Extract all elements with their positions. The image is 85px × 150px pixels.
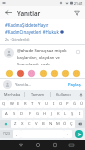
button[interactable]: @ahude Sonuçsuz miçok [0, 45, 85, 67]
staticText: O [59, 101, 63, 107]
button[interactable]: Key [0, 130, 13, 138]
button[interactable]: . [64, 130, 72, 138]
button[interactable]: J [48, 110, 55, 118]
button[interactable]: Key [0, 120, 11, 128]
button[interactable]: B [40, 120, 47, 128]
button[interactable]: Key [75, 120, 85, 128]
staticText: Kullanıcı [56, 92, 71, 97]
button[interactable]: F [26, 110, 34, 118]
staticText: R [24, 101, 27, 107]
staticText: G [36, 111, 40, 117]
button[interactable]: L [62, 110, 69, 118]
staticText: ?123 [3, 132, 10, 136]
staticText: P [66, 101, 69, 107]
button[interactable]: Back [12, 140, 29, 150]
button[interactable]: Paylaş [67, 81, 82, 89]
button[interactable]: Emoji [50, 69, 58, 77]
button[interactable]: Ü [78, 100, 85, 108]
button[interactable]: V [33, 120, 40, 128]
staticText: F [29, 111, 32, 117]
staticText: T [31, 101, 34, 107]
button[interactable]: Emoji [5, 69, 13, 77]
staticText: Ş [71, 111, 74, 117]
staticText: C [28, 121, 31, 127]
button[interactable]: Merhaba [0, 90, 24, 99]
button[interactable]: A [2, 110, 10, 118]
button[interactable]: U [43, 100, 50, 108]
button[interactable]: O [57, 100, 64, 108]
button[interactable]: Emoji [16, 69, 24, 77]
button[interactable]: Q [0, 100, 8, 108]
staticText: K [57, 111, 60, 117]
staticText: D [20, 111, 24, 117]
button[interactable]: Back [3, 7, 14, 18]
staticText: 21:41 [74, 1, 83, 6]
button[interactable]: Hide keyboard [63, 140, 80, 150]
button[interactable]: H [41, 110, 48, 118]
staticText: Ğ [73, 101, 77, 107]
staticText: . [67, 131, 69, 137]
staticText: , [16, 131, 18, 137]
button[interactable]: Emoji [39, 69, 47, 77]
button[interactable]: Voice input [76, 90, 85, 99]
button[interactable]: G [34, 110, 41, 118]
staticText: E [17, 101, 20, 107]
staticText: Paylaş [68, 82, 81, 88]
staticText: B [42, 121, 45, 127]
button[interactable]: R [22, 100, 29, 108]
button[interactable]: E [15, 100, 22, 108]
button[interactable]: I [50, 100, 57, 108]
button[interactable]: Emoji [72, 69, 80, 77]
button[interactable]: D [18, 110, 26, 118]
staticText: X [21, 121, 24, 127]
button[interactable]: Z [11, 120, 19, 128]
staticText: U [45, 101, 49, 107]
staticText: M [56, 121, 60, 127]
button[interactable]: X [19, 120, 26, 128]
button[interactable]: Ö [61, 120, 68, 128]
button[interactable]: , [13, 130, 21, 138]
button[interactable]: Recent apps [46, 140, 63, 150]
button[interactable]: Filter [71, 7, 82, 18]
button[interactable]: Emoji [61, 69, 69, 77]
button[interactable]: Tamam [25, 90, 50, 99]
button[interactable]: Ğ [71, 100, 78, 108]
button[interactable]: I [76, 110, 83, 118]
button[interactable]: Emoji [27, 69, 35, 77]
staticText: Ç [70, 121, 73, 127]
button[interactable]: #KadınaŞiddeteHayır #İstanbulSözleşmesi [0, 19, 85, 44]
staticText: Z [14, 121, 17, 127]
staticText: #KadınCinayetleri #Hukuk [5, 29, 59, 35]
staticText: Y [38, 101, 41, 107]
staticText: Ö [63, 121, 67, 127]
button[interactable]: K [55, 110, 62, 118]
button[interactable]: Ç [68, 120, 75, 128]
button[interactable]: S [10, 110, 18, 118]
button[interactable]: Ş [69, 110, 76, 118]
staticText: N [49, 121, 53, 127]
button[interactable]: M [54, 120, 61, 128]
staticText: I [53, 101, 55, 107]
button[interactable]: N [47, 120, 54, 128]
staticText: S [13, 111, 16, 117]
staticText: W [10, 101, 14, 107]
staticText: 2s · Gönderildi [5, 37, 30, 42]
button[interactable]: Kullanıcı [51, 90, 76, 99]
button[interactable]: Home [29, 140, 46, 150]
staticText: Sonuçlandı cezlr [17, 62, 50, 65]
button[interactable]: W [8, 100, 15, 108]
button[interactable]: T [29, 100, 36, 108]
staticText: @ahude Sonuçsuz miçok [17, 48, 67, 54]
staticText: J [51, 111, 53, 117]
button[interactable]: Y [36, 100, 43, 108]
staticText: A [5, 111, 8, 117]
button[interactable]: Send [75, 130, 83, 138]
button[interactable]: Yanıtla... [15, 82, 65, 88]
staticText: başlardan, olaydan ve polisten sitel [17, 55, 74, 61]
staticText: Ü [80, 101, 84, 107]
button[interactable]: P [64, 100, 71, 108]
staticText: I [79, 111, 81, 117]
button[interactable]: Like [74, 48, 82, 56]
button[interactable]: C [26, 120, 33, 128]
